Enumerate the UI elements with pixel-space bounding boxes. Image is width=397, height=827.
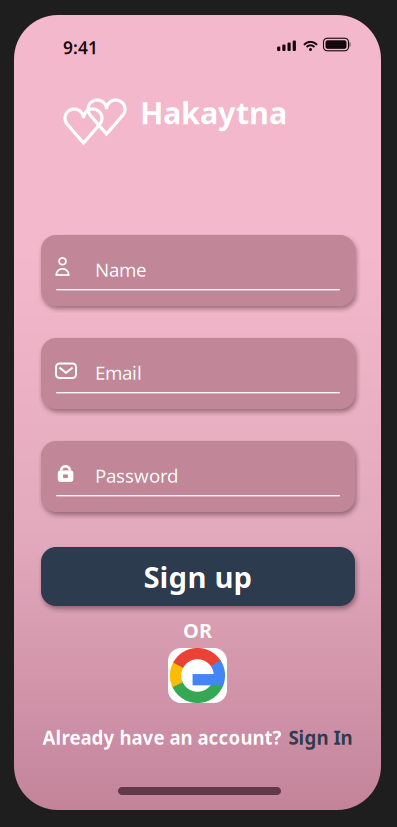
staticText: Name bbox=[95, 257, 147, 282]
button[interactable]: Sign In bbox=[288, 725, 352, 750]
button[interactable]: Name bbox=[41, 235, 355, 306]
staticText: Already have an account? bbox=[42, 725, 281, 750]
staticText: Email bbox=[95, 360, 142, 385]
staticText: OR bbox=[183, 617, 212, 644]
button[interactable]: Sign up bbox=[41, 547, 355, 606]
staticText: Hakaytna bbox=[140, 92, 287, 133]
staticText: Sign up bbox=[143, 557, 252, 596]
staticText: 9:41 bbox=[63, 36, 98, 59]
staticText: Sign In bbox=[288, 725, 352, 750]
staticText: Password bbox=[95, 463, 178, 488]
button[interactable]: Password bbox=[41, 441, 355, 512]
button[interactable]: Sign up with Google bbox=[168, 648, 227, 703]
button[interactable]: Email bbox=[41, 338, 355, 409]
